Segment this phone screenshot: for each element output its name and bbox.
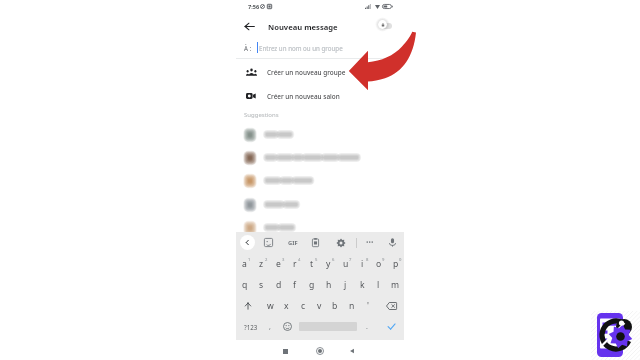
- staticText: ?123: [244, 323, 258, 331]
- button[interactable]: [236, 146, 404, 169]
- button[interactable]: h: [320, 274, 337, 295]
- staticText: g: [309, 279, 315, 291]
- staticText: k: [360, 279, 365, 291]
- staticText: w: [267, 300, 274, 312]
- staticText: À :: [244, 44, 252, 52]
- staticText: 7: [349, 257, 352, 263]
- button[interactable]: e: [270, 253, 287, 274]
- staticText: r: [293, 258, 297, 270]
- button[interactable]: m: [387, 274, 404, 295]
- button[interactable]: p: [387, 253, 404, 274]
- button[interactable]: l: [370, 274, 387, 295]
- button[interactable]: Créer un nouveau salon: [236, 84, 404, 108]
- button[interactable]: Micro: [387, 237, 398, 248]
- button[interactable]: Plus d'options: [363, 236, 376, 249]
- staticText: 6: [332, 257, 335, 263]
- button[interactable]: Accueil: [313, 344, 327, 358]
- staticText: h: [326, 279, 332, 291]
- button[interactable]: u: [337, 253, 354, 274]
- button[interactable]: ,: [263, 316, 277, 337]
- button[interactable]: ?123: [238, 316, 264, 337]
- button[interactable]: b: [327, 295, 343, 316]
- staticText: u: [343, 258, 349, 270]
- staticText: •••: [366, 238, 374, 247]
- staticText: 5: [315, 257, 318, 263]
- button[interactable]: Supprimer: [381, 295, 401, 316]
- button[interactable]: Retour: [241, 18, 257, 34]
- button[interactable]: k: [354, 274, 371, 295]
- button[interactable]: Majuscule: [239, 295, 257, 316]
- button[interactable]: Paramètres: [336, 238, 346, 248]
- button[interactable]: r: [286, 253, 303, 274]
- button[interactable]: n: [344, 295, 360, 316]
- staticText: ,: [269, 322, 271, 332]
- staticText: 8: [366, 257, 369, 263]
- staticText: 4: [298, 257, 301, 263]
- staticText: GIF: [288, 239, 298, 247]
- staticText: n: [349, 300, 355, 312]
- button[interactable]: c: [295, 295, 311, 316]
- button[interactable]: q: [236, 274, 253, 295]
- button[interactable]: g: [303, 274, 320, 295]
- button[interactable]: Créer un nouveau groupe: [236, 60, 404, 84]
- staticText: p: [393, 258, 399, 270]
- button[interactable]: x: [278, 295, 294, 316]
- staticText: d: [276, 279, 282, 291]
- staticText: c: [301, 300, 306, 312]
- staticText: q: [242, 279, 248, 291]
- staticText: 7:56: [248, 3, 260, 11]
- button[interactable]: j: [337, 274, 354, 295]
- staticText: s: [259, 279, 264, 291]
- button[interactable]: a: [236, 253, 253, 274]
- button[interactable]: GIF: [284, 236, 301, 249]
- staticText: y: [326, 258, 331, 270]
- staticText: 9: [382, 257, 385, 263]
- button[interactable]: [236, 123, 404, 146]
- button[interactable]: Retour: [345, 344, 359, 358]
- button[interactable]: .: [360, 316, 374, 337]
- staticText: Créer un nouveau salon: [267, 92, 340, 101]
- button[interactable]: s: [253, 274, 270, 295]
- staticText: l: [377, 279, 380, 291]
- staticText: Entrez un nom ou un groupe: [259, 44, 343, 52]
- button[interactable]: Applications récentes: [278, 344, 292, 358]
- button[interactable]: f: [286, 274, 303, 295]
- button[interactable]: y: [320, 253, 337, 274]
- button[interactable]: ': [360, 295, 376, 316]
- staticText: m: [391, 279, 400, 291]
- staticText: Suggestions: [244, 111, 279, 119]
- button[interactable]: w: [262, 295, 278, 316]
- staticText: x: [284, 300, 289, 312]
- staticText: i: [361, 258, 364, 270]
- staticText: f: [293, 279, 296, 291]
- button[interactable]: v: [311, 295, 327, 316]
- button[interactable]: Autocollants: [263, 237, 274, 248]
- button[interactable]: i: [354, 253, 371, 274]
- button[interactable]: Conversation secrète: [377, 17, 399, 35]
- button[interactable]: Valider: [381, 316, 401, 337]
- staticText: 3: [282, 257, 285, 263]
- staticText: o: [376, 258, 382, 270]
- button[interactable]: o: [370, 253, 387, 274]
- button[interactable]: [236, 169, 404, 192]
- button[interactable]: [236, 216, 404, 239]
- button[interactable]: Presse-papiers: [310, 237, 321, 248]
- staticText: 2: [265, 257, 268, 263]
- staticText: z: [259, 258, 264, 270]
- staticText: e: [276, 258, 281, 270]
- staticText: t: [310, 258, 314, 270]
- button[interactable]: Emoji: [280, 316, 294, 337]
- button[interactable]: Développer: [240, 235, 255, 250]
- staticText: v: [317, 300, 322, 312]
- staticText: Nouveau message: [268, 22, 338, 32]
- staticText: 1: [248, 257, 251, 263]
- button[interactable]: [236, 193, 404, 216]
- button[interactable]: z: [253, 253, 270, 274]
- button[interactable]: t: [303, 253, 320, 274]
- button[interactable]: Entrez un nom ou un groupe: [236, 38, 404, 57]
- staticText: 0: [399, 257, 402, 263]
- staticText: b: [332, 300, 338, 312]
- button[interactable]: d: [270, 274, 287, 295]
- staticText: j: [344, 279, 347, 291]
